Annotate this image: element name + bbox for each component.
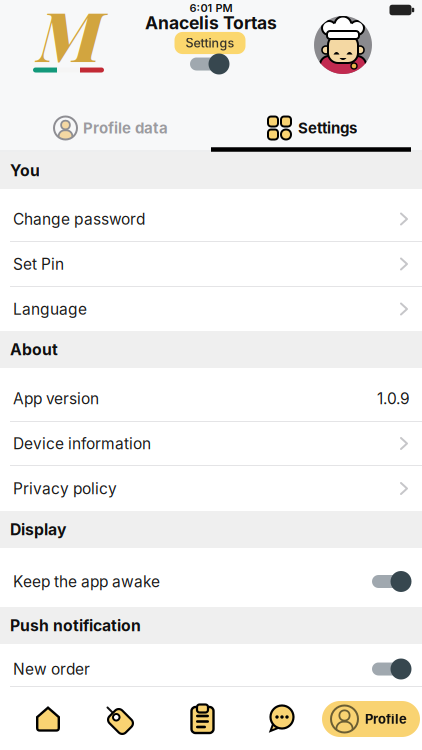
button[interactable]: Language: [0, 287, 422, 331]
button[interactable]: Profile photo: [314, 16, 372, 74]
button[interactable]: App version: [0, 368, 422, 421]
staticText: Keep the app awake: [13, 572, 160, 591]
staticText: Profile: [365, 711, 407, 727]
staticText: M: [38, 0, 103, 79]
button[interactable]: Settings: [174, 32, 245, 54]
staticText: You: [10, 161, 40, 180]
staticText: App version: [13, 389, 99, 408]
button[interactable]: Privacy policy: [0, 466, 422, 511]
staticText: Display: [10, 520, 66, 539]
button[interactable]: Device information: [0, 422, 422, 465]
button[interactable]: New order: [0, 644, 422, 686]
button[interactable]: Profile data: [54, 116, 168, 139]
button[interactable]: Settings mode: [188, 53, 230, 75]
button[interactable]: Profile: [322, 701, 420, 737]
button[interactable]: Orders: [190, 704, 215, 734]
button[interactable]: Home: [36, 706, 60, 731]
button[interactable]: Chat: [267, 705, 294, 732]
staticText: 6:01 PM: [189, 1, 232, 15]
staticText: Anacelis Tortas: [145, 12, 277, 34]
staticText: Settings: [185, 35, 234, 50]
staticText: Language: [13, 300, 87, 318]
staticText: Change password: [13, 210, 145, 228]
staticText: Push notification: [10, 616, 141, 635]
staticText: Settings: [298, 119, 357, 137]
staticText: Profile data: [83, 119, 168, 137]
button[interactable]: Settings: [267, 115, 357, 140]
button[interactable]: Products: [103, 703, 134, 734]
staticText: Device information: [13, 434, 151, 453]
staticText: New order: [13, 660, 90, 678]
staticText: Set Pin: [13, 255, 64, 273]
button[interactable]: Keep the app awake: [0, 548, 422, 607]
button[interactable]: Change password: [0, 189, 422, 241]
staticText: 1.0.9: [377, 389, 410, 408]
staticText: About: [10, 340, 58, 359]
button[interactable]: Set Pin: [0, 242, 422, 286]
staticText: Privacy policy: [13, 479, 117, 498]
